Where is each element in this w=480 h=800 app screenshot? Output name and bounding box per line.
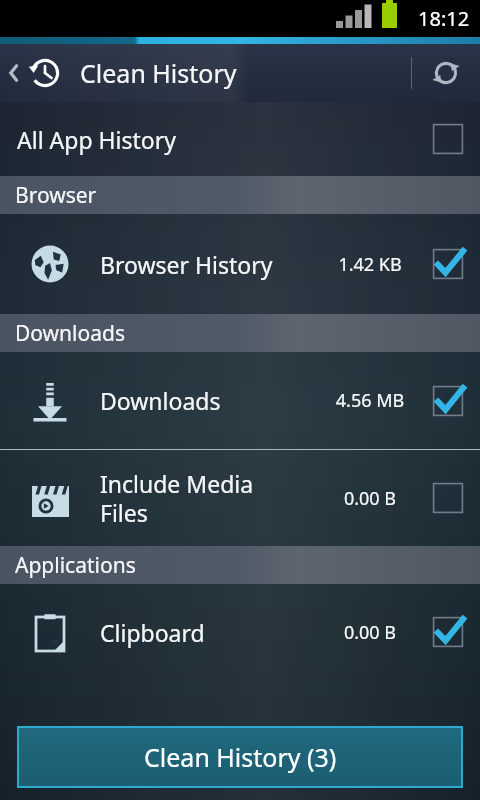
staticText: Clipboard (100, 617, 324, 648)
staticText: Browser (15, 181, 97, 210)
button[interactable]: Include Media Files (0, 450, 480, 546)
button[interactable]: Browser History (0, 214, 480, 314)
staticText: Applications (15, 551, 136, 580)
button[interactable]: Clean History (0, 44, 480, 102)
button[interactable]: Clipboard (0, 584, 480, 680)
button[interactable]: Checked (416, 214, 480, 314)
button[interactable]: All App History (0, 102, 480, 176)
button[interactable]: Checked (416, 584, 480, 680)
button[interactable]: Unchecked (416, 450, 480, 546)
staticText: Downloads (15, 319, 125, 348)
button[interactable]: Checked (416, 352, 480, 449)
button[interactable]: Unchecked (416, 102, 480, 176)
staticText: All App History (17, 124, 324, 155)
button[interactable]: Clean History (3) (19, 728, 461, 786)
staticText: Browser History (100, 249, 324, 280)
staticText: 4.56 MB (324, 388, 416, 413)
staticText: 0.00 B (324, 486, 416, 511)
staticText: 0.00 B (324, 620, 416, 645)
button[interactable]: Downloads (0, 352, 480, 449)
staticText: Clean History (80, 56, 237, 90)
staticText: Clean History (3) (144, 740, 337, 774)
staticText: 18:12 (418, 5, 470, 32)
button[interactable]: Refresh (412, 44, 480, 102)
staticText: Downloads (100, 385, 324, 416)
staticText: 1.42 KB (324, 252, 416, 277)
staticText: Include Media Files (100, 468, 324, 529)
